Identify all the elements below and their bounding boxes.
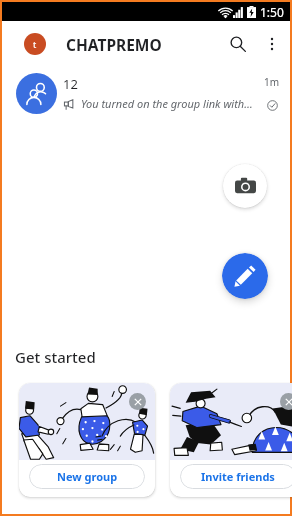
button[interactable]: Search [211,25,249,63]
button[interactable]: Dismiss [280,393,292,410]
staticText: 12 [63,75,78,93]
button[interactable]: New chat [222,253,268,299]
button[interactable]: Invite friends [180,464,292,489]
staticText: Get started [15,347,96,367]
button[interactable]: 12 [2,67,290,119]
staticText: CHATPREMO [66,34,162,55]
button[interactable]: More options [257,29,287,59]
button[interactable]: Camera [223,164,267,208]
staticText: 1:50 [260,4,284,20]
button[interactable]: New group [29,464,145,489]
staticText: 1m [264,75,280,89]
staticText: You turned on the group link with… [81,96,253,111]
staticText: Invite friends [201,469,275,484]
button[interactable]: Account [24,33,46,55]
staticText: New group [57,469,118,484]
button[interactable]: Dismiss [129,393,146,410]
staticText: t [33,38,37,50]
